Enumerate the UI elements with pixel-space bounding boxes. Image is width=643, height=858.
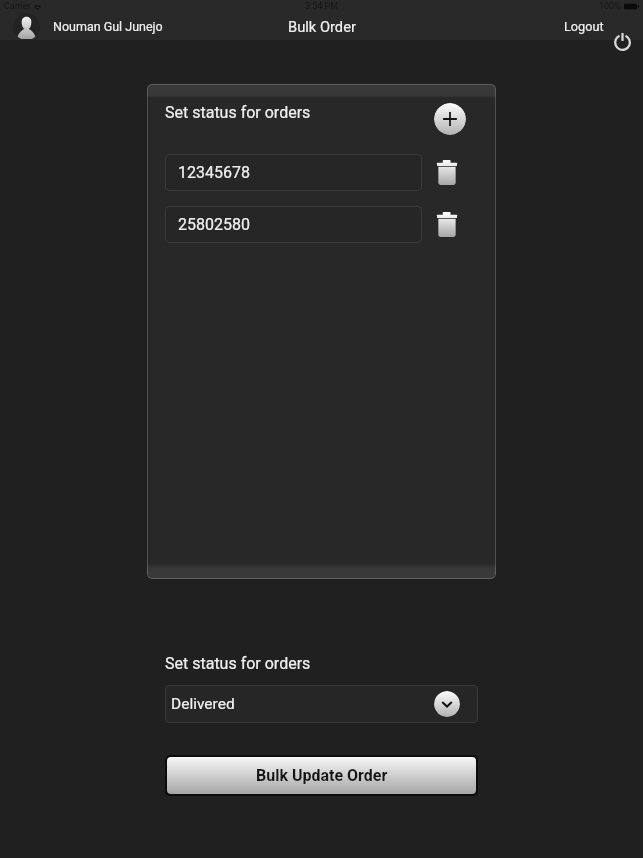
button[interactable]: 12345678: [165, 154, 422, 191]
button[interactable]: Delete order: [430, 155, 464, 191]
staticText: Logout: [564, 19, 604, 34]
staticText: Set status for orders: [165, 103, 311, 122]
staticText: 100%: [599, 1, 621, 12]
button[interactable]: Delivered: [165, 685, 478, 723]
button[interactable]: Open status dropdown: [434, 691, 460, 717]
staticText: Set status for orders: [165, 654, 311, 673]
button[interactable]: Power off: [609, 28, 636, 55]
button[interactable]: Delete order: [430, 207, 464, 243]
staticText: 12345678: [178, 163, 250, 182]
button[interactable]: Add order: [434, 103, 466, 135]
staticText: Carrier: [4, 1, 31, 12]
button[interactable]: Bulk Update Order: [167, 757, 476, 794]
button[interactable]: Logout: [560, 14, 608, 39]
staticText: Bulk Update Order: [256, 766, 388, 785]
button[interactable]: 25802580: [165, 206, 422, 243]
staticText: 3:54 PM: [305, 1, 339, 12]
staticText: Delivered: [171, 695, 235, 713]
button[interactable]: Profile: [13, 13, 40, 40]
staticText: 25802580: [178, 215, 250, 234]
staticText: Bulk Order: [288, 18, 356, 35]
staticText: Nouman Gul Junejo: [53, 19, 163, 34]
